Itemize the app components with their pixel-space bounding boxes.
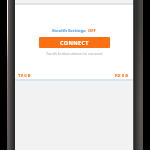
staticText: RX 0 B [115,73,128,79]
staticText: TX 0 B [18,73,31,79]
staticText: Stealth Settings: [52,28,88,34]
button[interactable]: CONNECT [39,37,110,48]
staticText: CONNECT [60,39,89,46]
staticText: Touch button above to connect [46,51,103,56]
staticText: OFF [88,28,96,34]
